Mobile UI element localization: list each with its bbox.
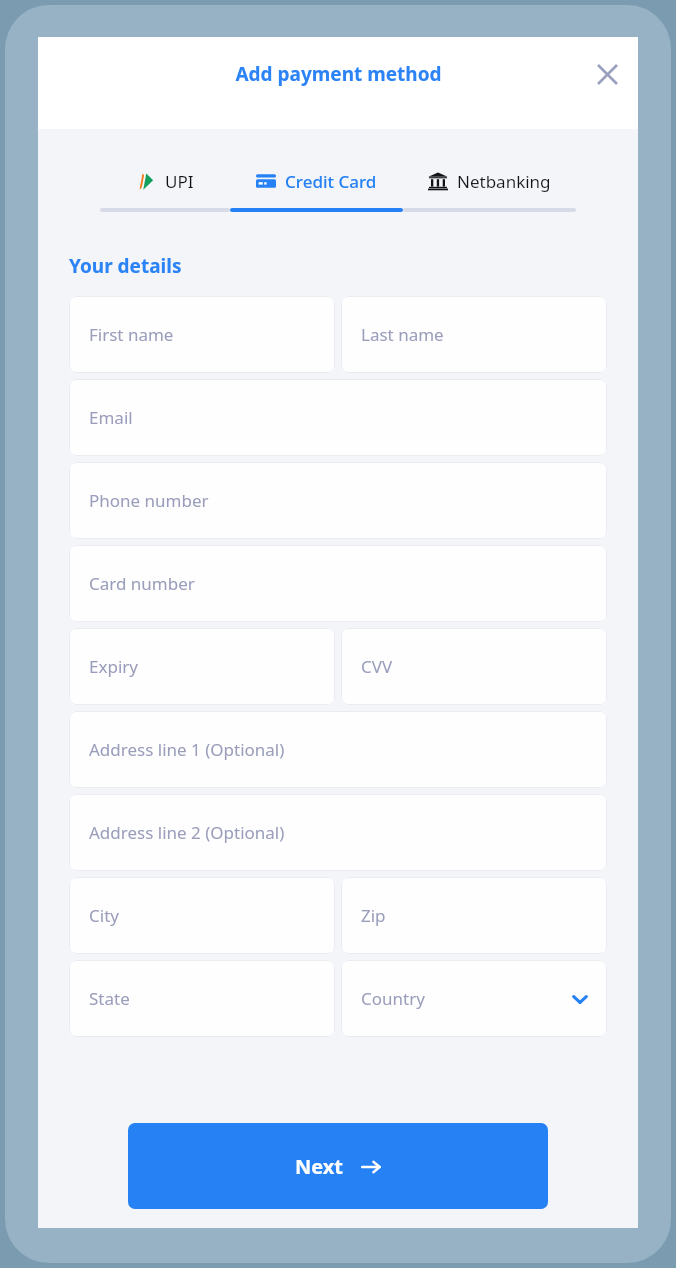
staticText: State bbox=[89, 987, 130, 1010]
staticText: First name bbox=[89, 323, 174, 346]
button[interactable]: First name bbox=[69, 296, 335, 373]
staticText: Address line 1 (Optional) bbox=[89, 738, 285, 761]
staticText: Add payment method bbox=[235, 61, 442, 87]
button[interactable]: State bbox=[69, 960, 335, 1037]
button[interactable]: Netbanking bbox=[403, 161, 576, 201]
staticText: Zip bbox=[361, 904, 386, 927]
button[interactable]: Email bbox=[69, 379, 607, 456]
button[interactable]: Credit Card bbox=[230, 161, 403, 201]
button[interactable]: Address line 2 (Optional) bbox=[69, 794, 607, 871]
staticText: Last name bbox=[361, 323, 444, 346]
button[interactable]: Close bbox=[584, 51, 630, 97]
button[interactable]: Expiry bbox=[69, 628, 335, 705]
button[interactable]: Address line 1 (Optional) bbox=[69, 711, 607, 788]
button[interactable]: Card number bbox=[69, 545, 607, 622]
button[interactable]: Next bbox=[128, 1123, 548, 1209]
staticText: Your details bbox=[69, 253, 182, 279]
staticText: CVV bbox=[361, 655, 393, 678]
button[interactable]: CVV bbox=[341, 628, 607, 705]
staticText: Netbanking bbox=[457, 170, 551, 193]
button[interactable]: City bbox=[69, 877, 335, 954]
button[interactable]: Phone number bbox=[69, 462, 607, 539]
staticText: Address line 2 (Optional) bbox=[89, 821, 285, 844]
staticText: Next bbox=[295, 1153, 344, 1180]
staticText: Email bbox=[89, 406, 133, 429]
staticText: UPI bbox=[165, 170, 194, 193]
staticText: Credit Card bbox=[285, 170, 377, 193]
staticText: Phone number bbox=[89, 489, 209, 512]
button[interactable]: Zip bbox=[341, 877, 607, 954]
staticText: Expiry bbox=[89, 655, 138, 678]
button[interactable]: Country bbox=[341, 960, 607, 1037]
button[interactable]: Last name bbox=[341, 296, 607, 373]
staticText: Card number bbox=[89, 572, 195, 595]
staticText: Country bbox=[361, 987, 425, 1010]
button[interactable]: UPI bbox=[100, 161, 230, 201]
staticText: City bbox=[89, 904, 119, 927]
